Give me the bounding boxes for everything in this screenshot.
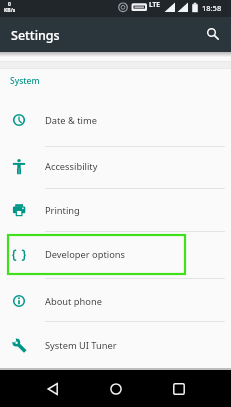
button[interactable]: About phone <box>0 280 231 322</box>
staticText: Developer options <box>45 248 125 261</box>
staticText: 18:58 <box>202 3 222 13</box>
staticText: LTE <box>149 0 160 9</box>
button[interactable] <box>96 370 136 407</box>
button[interactable]: Printing <box>0 189 231 231</box>
button[interactable]: Date & time <box>0 98 231 142</box>
staticText: 0 <box>8 1 11 8</box>
staticText: Settings <box>11 27 60 44</box>
staticText: About phone <box>45 295 102 308</box>
button[interactable]: Settings <box>0 17 231 52</box>
staticText: Date & time <box>45 114 97 127</box>
staticText: System UI Tuner <box>45 339 117 352</box>
staticText: System <box>10 75 40 87</box>
button[interactable]: Developer options <box>0 232 231 277</box>
staticText: Printing <box>45 204 80 217</box>
button[interactable]: System UI Tuner <box>0 324 231 366</box>
button[interactable]: Accessibility <box>0 145 231 187</box>
staticText: Accessibility <box>45 160 98 173</box>
staticText: KB/s <box>4 7 16 14</box>
button[interactable] <box>33 370 73 407</box>
button[interactable] <box>159 370 199 407</box>
